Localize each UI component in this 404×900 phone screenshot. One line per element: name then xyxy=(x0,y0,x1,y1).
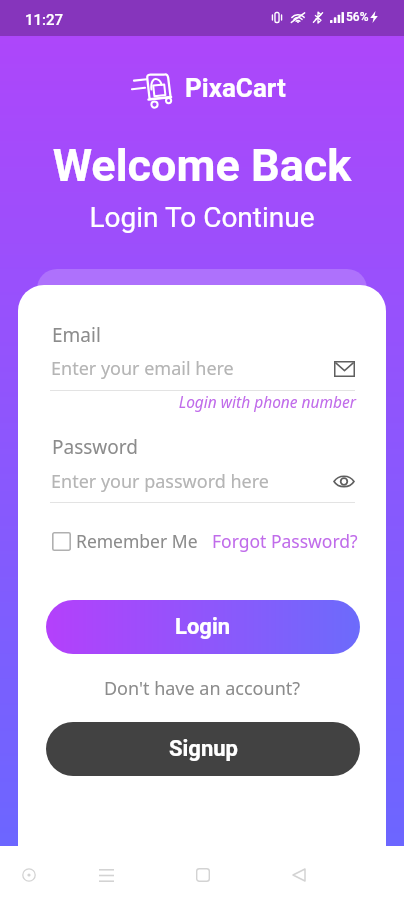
button[interactable]: Remember Me xyxy=(52,529,198,553)
staticText: Email xyxy=(52,322,101,348)
staticText: Don't have an account? xyxy=(0,676,404,701)
button[interactable]: Home xyxy=(183,855,223,895)
other: Show password xyxy=(333,474,355,489)
staticText: 56% xyxy=(346,10,369,24)
button[interactable]: Signup xyxy=(46,722,360,776)
button[interactable]: Menu xyxy=(86,855,126,895)
button[interactable]: Forgot Password? xyxy=(212,529,358,553)
staticText: Login To Continue xyxy=(0,201,404,234)
staticText: Remember Me xyxy=(76,529,198,553)
button[interactable]: Back xyxy=(279,855,319,895)
button[interactable]: Assistant xyxy=(9,855,49,895)
staticText: 11:27 xyxy=(25,11,64,29)
staticText: PixaCart xyxy=(185,73,286,103)
staticText: Enter your password here xyxy=(51,469,333,494)
staticText: Welcome Back xyxy=(0,139,404,192)
staticText: Login xyxy=(175,614,231,640)
button[interactable]: Login xyxy=(46,600,360,654)
staticText: Signup xyxy=(169,736,238,762)
staticText: Password xyxy=(52,434,138,460)
staticText: Enter your email here xyxy=(51,356,334,381)
other: Email xyxy=(334,361,355,377)
button[interactable]: Login with phone number xyxy=(50,391,356,412)
